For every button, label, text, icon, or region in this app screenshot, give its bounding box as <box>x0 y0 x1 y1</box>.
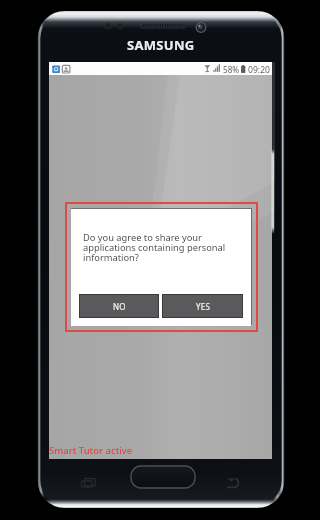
button[interactable]: Recent apps <box>72 470 104 496</box>
button[interactable]: Back <box>218 470 250 496</box>
staticText: YES <box>196 301 210 312</box>
staticText: Smart Tutor active <box>49 444 133 457</box>
staticText: Do you agree to share your applications … <box>83 231 233 264</box>
staticText: 09:20 <box>248 64 270 76</box>
staticText: NO <box>113 301 126 312</box>
button[interactable]: YES <box>163 295 242 317</box>
staticText: 58% <box>223 64 240 75</box>
button[interactable]: NO <box>80 295 158 317</box>
staticText: SAMSUNG <box>127 36 195 54</box>
